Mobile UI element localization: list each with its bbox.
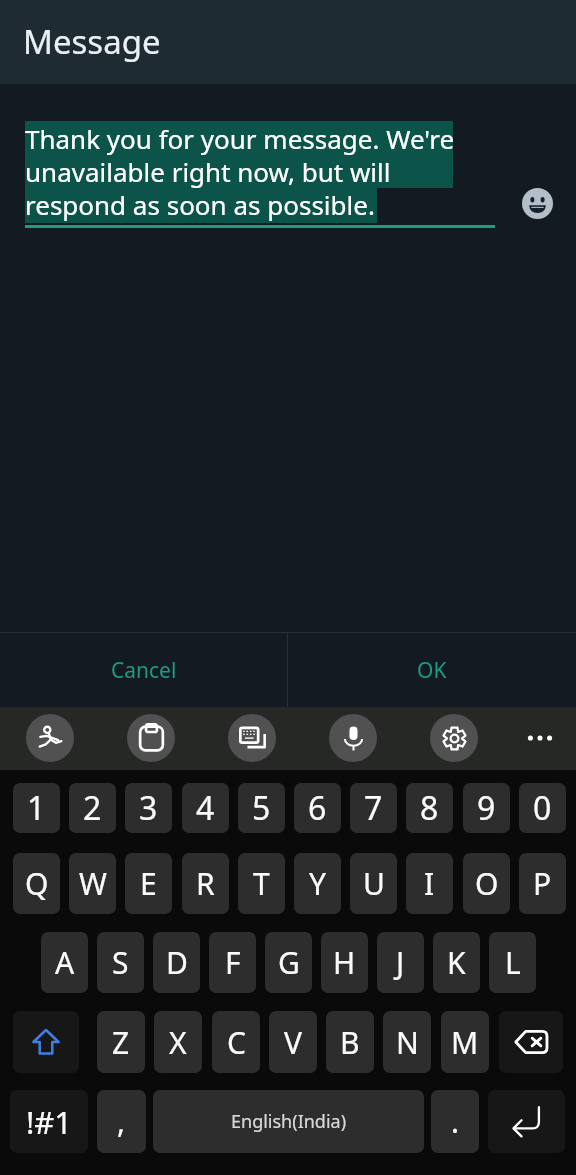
staticText: V: [284, 1022, 302, 1063]
button[interactable]: U: [350, 853, 397, 914]
button[interactable]: R: [182, 853, 229, 914]
button[interactable]: 2: [69, 783, 116, 833]
staticText: 0: [533, 786, 552, 830]
staticText: 1: [27, 786, 46, 830]
button[interactable]: Voice input: [329, 714, 377, 762]
staticText: B: [340, 1022, 360, 1063]
button[interactable]: O: [463, 853, 510, 914]
staticText: A: [55, 942, 75, 983]
button[interactable]: !#1: [10, 1090, 88, 1153]
staticText: Q: [25, 863, 49, 904]
button[interactable]: 3: [125, 783, 172, 833]
button[interactable]: C: [212, 1011, 260, 1073]
staticText: Thank you for your message. We're unavai…: [25, 121, 455, 223]
button[interactable]: Enter: [488, 1090, 565, 1153]
button[interactable]: Clipboard: [127, 714, 175, 762]
staticText: F: [225, 942, 241, 983]
staticText: H: [333, 942, 356, 983]
staticText: 6: [308, 786, 327, 830]
button[interactable]: 4: [182, 783, 229, 833]
staticText: 4: [196, 786, 215, 830]
staticText: !#1: [26, 1101, 73, 1143]
staticText: 7: [364, 786, 383, 830]
staticText: J: [396, 942, 405, 983]
staticText: P: [533, 863, 552, 904]
staticText: O: [475, 863, 499, 904]
button[interactable]: Z: [97, 1011, 145, 1073]
button[interactable]: E: [125, 853, 172, 914]
button[interactable]: Cancel: [0, 633, 287, 707]
staticText: T: [253, 863, 270, 904]
button[interactable]: K: [433, 932, 480, 993]
button[interactable]: I: [406, 853, 453, 914]
button[interactable]: P: [519, 853, 566, 914]
staticText: 9: [477, 786, 496, 830]
button[interactable]: S: [97, 932, 144, 993]
button[interactable]: Y: [294, 853, 341, 914]
button[interactable]: Settings: [430, 714, 478, 762]
staticText: U: [363, 863, 385, 904]
staticText: D: [166, 942, 188, 983]
staticText: Message: [23, 19, 161, 64]
staticText: Z: [112, 1022, 130, 1063]
button[interactable]: More options: [516, 714, 564, 762]
button[interactable]: B: [326, 1011, 374, 1073]
button[interactable]: Q: [13, 853, 60, 914]
button[interactable]: 6: [294, 783, 341, 833]
staticText: G: [278, 942, 300, 983]
staticText: 3: [139, 786, 158, 830]
button[interactable]: J: [377, 932, 424, 993]
button[interactable]: 8: [406, 783, 453, 833]
button[interactable]: 7: [350, 783, 397, 833]
staticText: 5: [252, 786, 271, 830]
button[interactable]: N: [383, 1011, 431, 1073]
staticText: Cancel: [111, 656, 177, 685]
button[interactable]: Stickers: [26, 714, 74, 762]
button[interactable]: D: [153, 932, 200, 993]
staticText: K: [447, 942, 466, 983]
button[interactable]: W: [69, 853, 116, 914]
staticText: X: [169, 1022, 187, 1063]
staticText: 8: [420, 786, 439, 830]
button[interactable]: OK: [288, 633, 576, 707]
button[interactable]: H: [321, 932, 368, 993]
staticText: C: [227, 1022, 246, 1063]
staticText: E: [140, 863, 157, 904]
button[interactable]: V: [269, 1011, 317, 1073]
staticText: OK: [417, 656, 447, 685]
button[interactable]: .: [431, 1090, 479, 1153]
staticText: W: [79, 863, 107, 904]
staticText: N: [396, 1022, 419, 1063]
button[interactable]: Emoji: [522, 188, 553, 219]
button[interactable]: English(India): [153, 1090, 424, 1153]
button[interactable]: L: [489, 932, 536, 993]
staticText: M: [451, 1022, 479, 1063]
staticText: L: [505, 942, 521, 983]
staticText: 2: [83, 786, 102, 830]
button[interactable]: ,: [97, 1090, 146, 1153]
staticText: Y: [309, 863, 326, 904]
button[interactable]: 0: [519, 783, 566, 833]
button[interactable]: 5: [238, 783, 285, 833]
button[interactable]: 9: [463, 783, 510, 833]
button[interactable]: M: [441, 1011, 489, 1073]
button[interactable]: G: [265, 932, 312, 993]
button[interactable]: Shift: [13, 1011, 79, 1073]
button[interactable]: F: [209, 932, 256, 993]
staticText: S: [112, 942, 129, 983]
button[interactable]: Keyboard layout: [228, 714, 276, 762]
staticText: .: [451, 1101, 460, 1142]
button[interactable]: Backspace: [499, 1011, 563, 1073]
staticText: R: [196, 863, 215, 904]
button[interactable]: A: [41, 932, 88, 993]
staticText: ,: [117, 1101, 126, 1142]
button[interactable]: T: [238, 853, 285, 914]
button[interactable]: 1: [13, 783, 60, 833]
staticText: I: [424, 863, 435, 904]
staticText: English(India): [231, 1109, 347, 1134]
button[interactable]: X: [154, 1011, 202, 1073]
